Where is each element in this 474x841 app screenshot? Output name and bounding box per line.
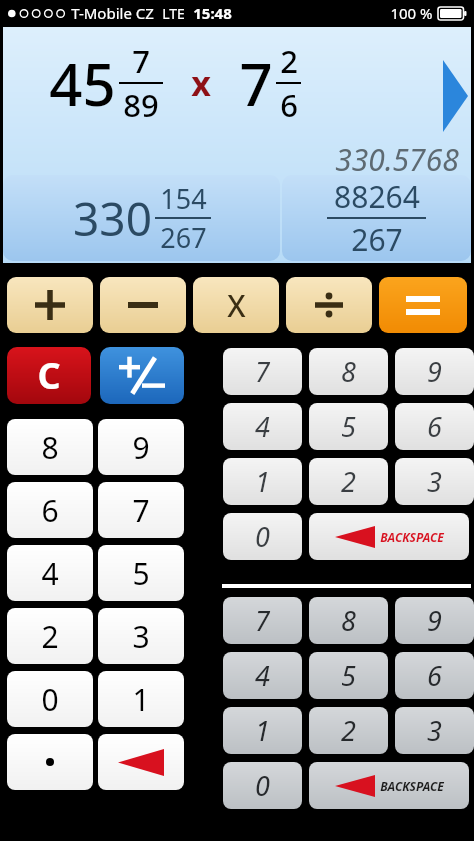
staticText: 330 [73, 187, 152, 250]
staticText: 0 [255, 518, 270, 555]
staticText: 2 [41, 616, 59, 657]
button[interactable]: 1 [223, 458, 302, 505]
staticText: 2 [341, 712, 356, 749]
staticText: 88264 [334, 176, 420, 217]
staticText: 7 [132, 490, 150, 531]
staticText: 3 [427, 712, 442, 749]
button[interactable]: 4 [7, 545, 93, 601]
staticText: LTE [162, 4, 185, 23]
staticText: 6 [427, 408, 442, 445]
button[interactable]: 7 [223, 597, 302, 644]
staticText: 5 [341, 408, 356, 445]
button[interactable]: 6 [395, 652, 474, 699]
staticText: 7 [132, 40, 150, 82]
button[interactable]: 5 [309, 403, 388, 450]
button[interactable]: 7 [98, 482, 184, 538]
button[interactable]: 9 [395, 597, 474, 644]
button[interactable]: Backspace denominator [309, 762, 469, 809]
button[interactable]: Clear [7, 347, 91, 404]
button[interactable]: 6 [7, 482, 93, 538]
staticText: 8 [341, 353, 356, 390]
staticText: 1 [132, 679, 150, 720]
staticText: BACKSPACE [380, 778, 444, 794]
staticText: 6 [427, 657, 442, 694]
staticText: 3 [132, 616, 150, 657]
staticText: 8 [41, 427, 59, 468]
button[interactable]: 2 [309, 707, 388, 754]
button[interactable]: 7 [223, 348, 302, 395]
button[interactable]: 8 [7, 419, 93, 475]
staticText: 15:48 [193, 3, 232, 23]
button[interactable]: 88264 [282, 175, 471, 261]
staticText: 45 [49, 44, 116, 123]
staticText: 4 [255, 657, 270, 694]
staticText: C [37, 351, 61, 400]
button[interactable]: 0 [7, 671, 93, 727]
staticText: 330.5768 [335, 139, 459, 180]
button[interactable]: 8 [309, 597, 388, 644]
button[interactable]: Toggle sign [100, 347, 184, 404]
staticText: 89 [123, 84, 159, 126]
button[interactable]: Multiply [193, 277, 279, 333]
staticText: 0 [255, 767, 270, 804]
button[interactable]: 3 [395, 458, 474, 505]
button[interactable]: 0 [223, 762, 302, 809]
button[interactable]: Backspace numerator [309, 513, 469, 560]
staticText: 1 [255, 463, 270, 500]
button[interactable]: 3 [395, 707, 474, 754]
staticText: 1 [255, 712, 270, 749]
button[interactable]: Next expression [443, 60, 468, 132]
button[interactable]: 9 [98, 419, 184, 475]
staticText: 6 [41, 490, 59, 531]
button[interactable]: 2 [7, 608, 93, 664]
staticText: X [227, 285, 246, 326]
button[interactable]: 2 [309, 458, 388, 505]
staticText: 267 [351, 219, 403, 260]
staticText: 9 [132, 427, 150, 468]
button[interactable]: 6 [395, 403, 474, 450]
staticText: 154 [160, 180, 207, 217]
staticText: T-Mobile CZ [71, 3, 154, 23]
staticText: 267 [160, 219, 207, 256]
button[interactable]: Minus [100, 277, 186, 333]
button[interactable]: 5 [98, 545, 184, 601]
staticText: 7 [255, 602, 270, 639]
staticText: 0 [41, 679, 59, 720]
button[interactable]: 1 [223, 707, 302, 754]
staticText: 4 [41, 553, 59, 594]
staticText: 5 [132, 553, 150, 594]
button[interactable]: 0 [223, 513, 302, 560]
staticText: 6 [280, 84, 298, 126]
button[interactable]: 4 [223, 403, 302, 450]
staticText: 3 [427, 463, 442, 500]
button[interactable]: 3 [98, 608, 184, 664]
button[interactable]: 4 [223, 652, 302, 699]
button[interactable]: Backspace [98, 734, 184, 790]
staticText: BACKSPACE [380, 529, 444, 545]
staticText: 9 [427, 353, 442, 390]
staticText: 9 [427, 602, 442, 639]
button[interactable]: 8 [309, 348, 388, 395]
button[interactable]: Decimal point [7, 734, 93, 790]
button[interactable]: 1 [98, 671, 184, 727]
staticText: 4 [255, 408, 270, 445]
staticText: 5 [341, 657, 356, 694]
button[interactable]: Divide [286, 277, 372, 333]
staticText: 8 [341, 602, 356, 639]
button[interactable]: 5 [309, 652, 388, 699]
button[interactable]: Equals [379, 277, 467, 333]
staticText: 2 [341, 463, 356, 500]
staticText: x [191, 60, 211, 106]
button[interactable]: 9 [395, 348, 474, 395]
button[interactable]: Plus [7, 277, 93, 333]
staticText: 100 % [390, 3, 433, 23]
button[interactable]: 330 [3, 175, 280, 261]
staticText: 2 [280, 40, 298, 82]
staticText: 7 [255, 353, 270, 390]
staticText: 7 [239, 44, 273, 123]
